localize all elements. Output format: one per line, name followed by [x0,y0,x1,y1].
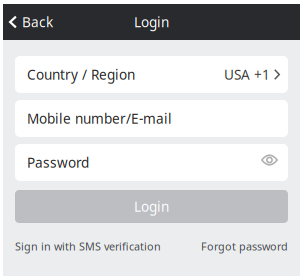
staticText: Login [134,13,169,31]
button[interactable]: Login [15,190,288,223]
staticText: Back [22,13,53,31]
staticText: Mobile number/E-mail [27,109,172,128]
button[interactable]: Forgot password [201,239,288,254]
staticText: USA +1 [224,65,270,84]
staticText: Forgot password [201,239,288,254]
staticText: Country / Region [27,65,135,84]
staticText: Login [134,197,169,216]
button[interactable]: Country / Region [15,56,288,93]
staticText: Password [27,153,89,172]
button[interactable]: Back [3,4,61,40]
staticText: Sign in with SMS verification [15,239,161,254]
button[interactable]: Show password [260,148,280,176]
button[interactable]: Sign in with SMS verification [15,239,161,254]
